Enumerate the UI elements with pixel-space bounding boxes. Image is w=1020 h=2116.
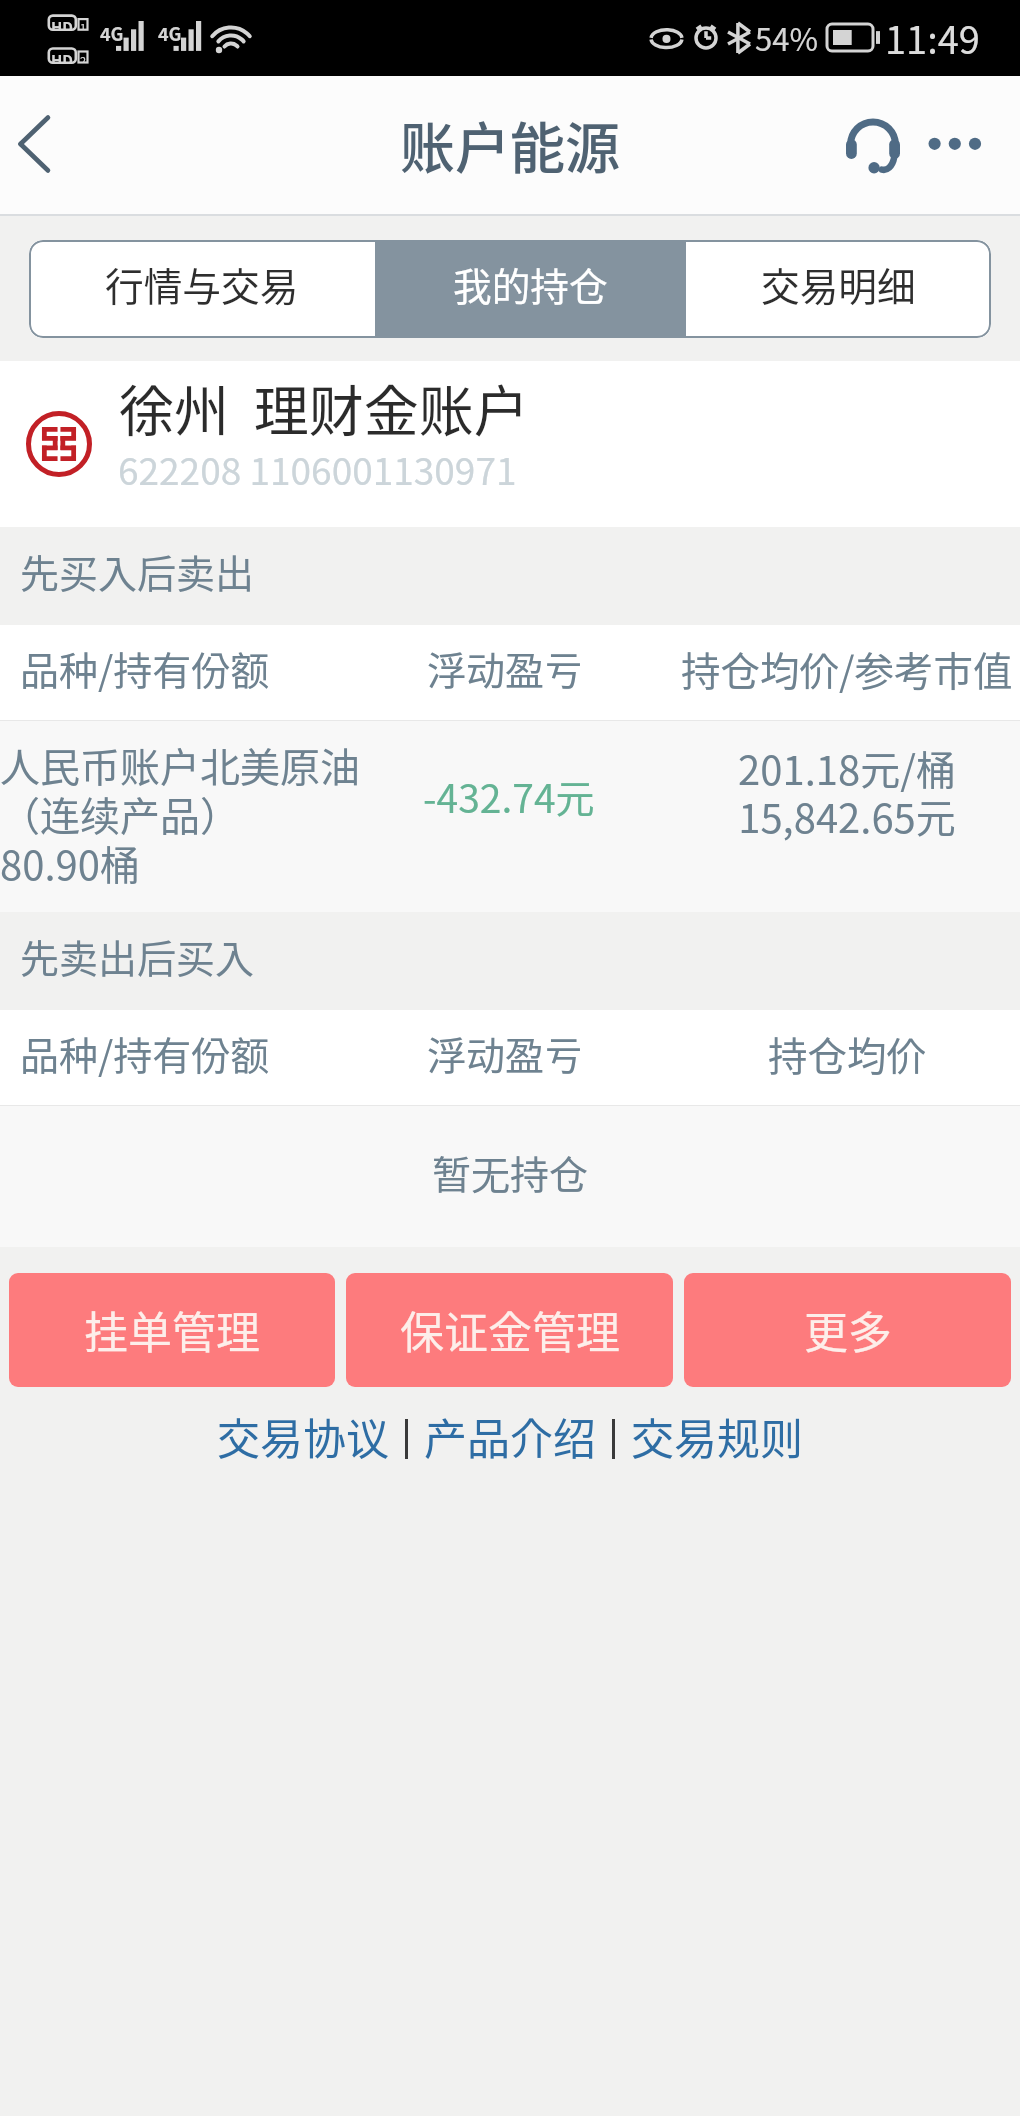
- staticText: 交易协议: [217, 1405, 389, 1467]
- staticText: 浮动盈亏: [427, 1025, 584, 1081]
- staticText: 交易明细: [761, 256, 916, 312]
- staticText: 暂无持仓: [432, 1144, 589, 1200]
- staticText: 201.18元/桶 15,842.65元: [738, 739, 956, 844]
- staticText: 品种/持有份额: [20, 1025, 270, 1081]
- staticText: 11:49: [885, 10, 980, 65]
- staticText: 交易规则: [631, 1405, 803, 1467]
- staticText: 先卖出后买入: [20, 928, 255, 984]
- staticText: 1: [80, 19, 87, 30]
- staticText: 挂单管理: [84, 1298, 260, 1362]
- staticText: 账户能源: [400, 104, 621, 184]
- staticText: 持仓均价: [768, 1025, 926, 1082]
- staticText: 浮动盈亏: [427, 640, 584, 696]
- staticText: HD: [51, 49, 74, 63]
- staticText: 4G: [158, 20, 182, 46]
- button[interactable]: 徐州 理财金账户: [0, 361, 1020, 527]
- staticText: 保证金管理: [400, 1298, 620, 1362]
- button[interactable]: 行情与交易: [29, 240, 375, 338]
- button[interactable]: Customer service: [822, 76, 924, 216]
- button[interactable]: 交易明细: [686, 240, 991, 338]
- staticText: 行情与交易: [105, 256, 299, 312]
- staticText: 先买入后卖出: [20, 543, 255, 599]
- staticText: 622208 1106001130971: [118, 442, 517, 496]
- staticText: HD: [51, 16, 74, 30]
- button[interactable]: 更多: [684, 1273, 1011, 1387]
- staticText: 更多: [804, 1298, 892, 1362]
- staticText: 人民币账户北美原油 （连续产品） 80.90桶: [0, 736, 380, 892]
- staticText: 品种/持有份额: [20, 640, 270, 696]
- staticText: 54%: [755, 15, 818, 60]
- button[interactable]: 产品介绍: [424, 1408, 596, 1470]
- button[interactable]: 交易规则: [631, 1408, 803, 1470]
- button[interactable]: Back: [0, 76, 82, 216]
- button[interactable]: 保证金管理: [346, 1273, 673, 1387]
- staticText: 2: [80, 52, 87, 63]
- button[interactable]: 我的持仓: [375, 240, 686, 338]
- staticText: 产品介绍: [424, 1405, 596, 1467]
- staticText: 徐州 理财金账户: [119, 367, 529, 447]
- button[interactable]: 人民币账户北美原油 （连续产品） 80.90桶: [0, 721, 1020, 912]
- button[interactable]: More options: [910, 76, 1020, 216]
- staticText: 持仓均价/参考市值: [681, 640, 1013, 697]
- staticText: 我的持仓: [453, 256, 608, 312]
- button[interactable]: 挂单管理: [9, 1273, 335, 1387]
- staticText: 4G: [100, 20, 124, 46]
- staticText: -432.74元: [423, 768, 595, 824]
- button[interactable]: 交易协议: [217, 1408, 389, 1470]
